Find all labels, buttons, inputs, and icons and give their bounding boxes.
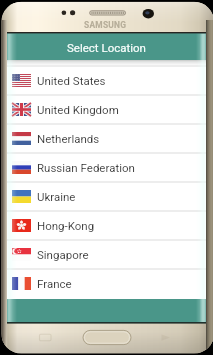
staticText: United Kingdom [37, 103, 119, 116]
button[interactable]: United States [7, 65, 206, 94]
staticText: Select Location [67, 41, 146, 54]
button[interactable]: Hong-Kong [7, 210, 206, 239]
button[interactable]: Russian Federation [7, 152, 206, 181]
staticText: Singapore [37, 248, 89, 261]
staticText: Russian Federation [37, 161, 135, 174]
staticText: Ukraine [37, 190, 76, 203]
button[interactable]: United Kingdom [7, 94, 206, 123]
staticText: Hong-Kong [37, 219, 95, 232]
staticText: United States [37, 74, 106, 87]
button[interactable]: Netherlands [7, 123, 206, 152]
button[interactable]: France [7, 268, 206, 297]
button[interactable]: Select Location [7, 33, 206, 60]
staticText: SAMSUNG [84, 20, 127, 29]
staticText: Netherlands [37, 132, 100, 145]
button[interactable]: Singapore [7, 239, 206, 268]
staticText: France [37, 277, 72, 290]
button[interactable]: Ukraine [7, 181, 206, 210]
